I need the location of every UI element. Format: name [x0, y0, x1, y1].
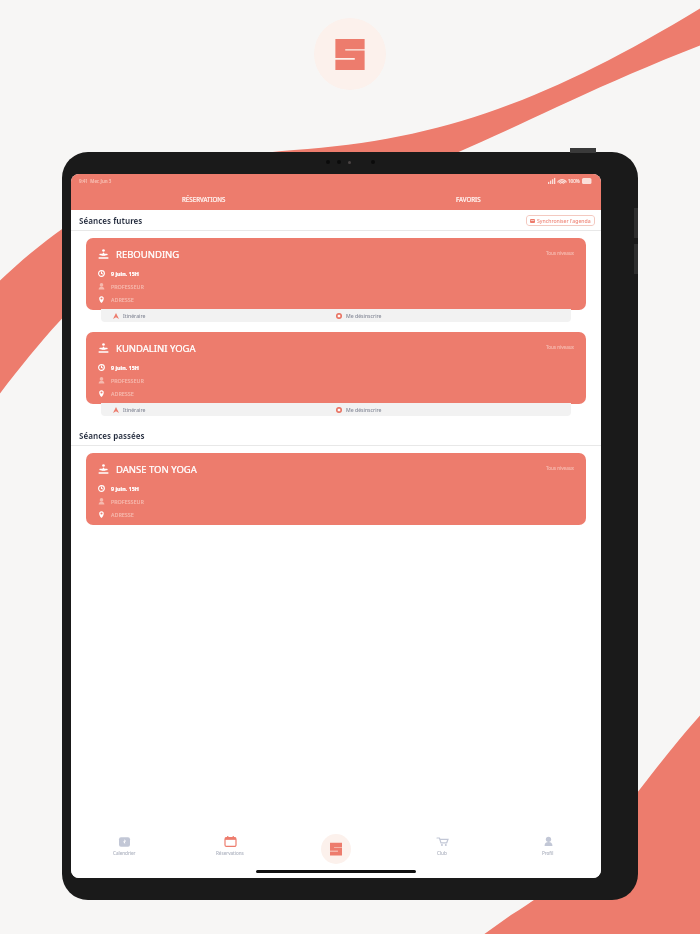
button[interactable]: Club [389, 834, 495, 856]
staticText: 9 juin. 15H [111, 485, 139, 492]
button[interactable]: Calendrier [71, 834, 177, 856]
button[interactable]: KUNDALINI YOGA [86, 332, 586, 404]
button[interactable]: Me désinscrire [336, 403, 571, 416]
staticText: PROFESSEUR [111, 498, 144, 505]
staticText: Séances passées [79, 430, 145, 441]
staticText: KUNDALINI YOGA [116, 342, 196, 355]
staticText: 9 juin. 15H [111, 364, 139, 371]
staticText: Tous niveaux [546, 465, 575, 471]
button[interactable]: FAVORIS [336, 188, 601, 210]
button[interactable]: DANSE TON YOGA [86, 453, 586, 525]
staticText: DANSE TON YOGA [116, 463, 197, 476]
button[interactable]: Réservations [177, 834, 283, 856]
staticText: PROFESSEUR [111, 377, 144, 384]
staticText: Club [437, 850, 447, 856]
button[interactable]: RÉSERVATIONS [71, 188, 336, 210]
button[interactable]: Itinéraire [101, 309, 336, 322]
staticText: Calendrier [113, 850, 136, 856]
button[interactable]: Accueil [321, 834, 351, 864]
staticText: FAVORIS [456, 195, 481, 203]
button[interactable]: Synchroniser l'agenda [526, 215, 595, 226]
staticText: Synchroniser l'agenda [537, 217, 591, 224]
staticText: 100% [568, 178, 580, 184]
staticText: ADRESSE [111, 390, 134, 397]
staticText: 9 juin. 15H [111, 270, 139, 277]
button[interactable]: Me désinscrire [336, 309, 571, 322]
staticText: Tous niveaux [546, 344, 575, 350]
staticText: Séances futures [79, 215, 143, 226]
staticText: RÉSERVATIONS [182, 195, 226, 203]
staticText: Itinéraire [123, 312, 146, 319]
staticText: Réservations [216, 850, 244, 856]
staticText: Me désinscrire [346, 406, 382, 413]
staticText: 9:41 Mer. Jun 3 [79, 178, 112, 184]
staticText: REBOUNDING [116, 248, 180, 261]
button[interactable]: Itinéraire [101, 403, 336, 416]
staticText: Itinéraire [123, 406, 146, 413]
button[interactable]: Profil [495, 834, 601, 856]
staticText: Tous niveaux [546, 250, 575, 256]
staticText: ADRESSE [111, 296, 134, 303]
staticText: Me désinscrire [346, 312, 382, 319]
button[interactable]: REBOUNDING [86, 238, 586, 310]
staticText: Profil [542, 850, 554, 856]
staticText: ADRESSE [111, 511, 134, 518]
staticText: PROFESSEUR [111, 283, 144, 290]
